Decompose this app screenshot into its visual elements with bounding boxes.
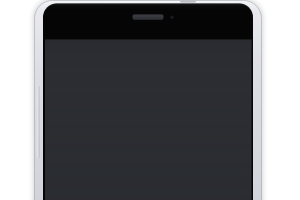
button[interactable]: Phone device mockup	[0, 0, 300, 200]
